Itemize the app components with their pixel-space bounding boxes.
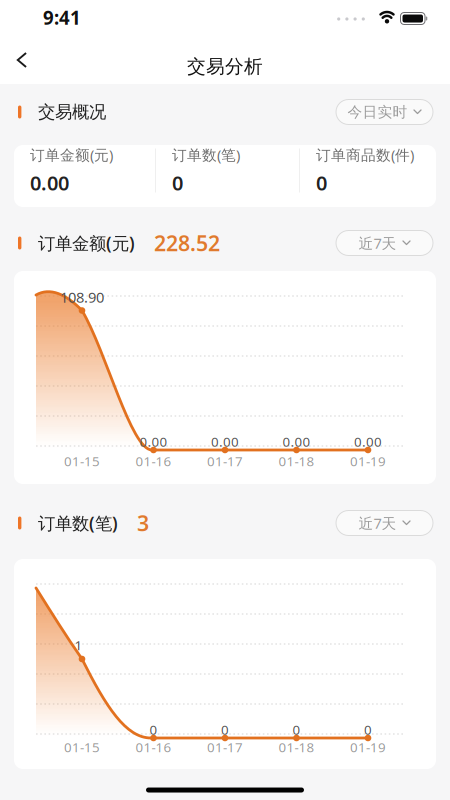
staticText: 0 [172,169,183,196]
staticText: 01-15 [64,738,100,756]
staticText: 0 [221,721,229,738]
staticText: 0 [364,721,372,738]
staticText: 01-17 [207,452,243,470]
staticText: 01-19 [350,452,386,470]
staticText: 今日实时 [347,103,407,121]
staticText: 0 [149,721,157,738]
staticText: 9:41 [43,5,81,30]
staticText: 0 [316,169,327,196]
staticText: 订单商品数(件) [316,145,414,164]
staticText: 01-19 [350,738,386,756]
button[interactable] [7,42,37,78]
staticText: 0.00 [139,433,167,450]
staticText: 交易概况 [38,101,106,123]
staticText: 近7天 [358,233,396,253]
staticText: 01-16 [135,452,171,470]
staticText: 0.00 [354,433,382,450]
staticText: 订单数(笔) [38,511,118,534]
staticText: 01-18 [278,738,314,756]
staticText: 近7天 [358,513,396,533]
staticText: 01-15 [64,452,100,470]
button[interactable]: 今日实时 [336,99,433,124]
staticText: 01-18 [278,452,314,470]
staticText: 0.00 [282,433,310,450]
staticText: 订单金额(元) [30,145,113,164]
staticText: 1 [74,636,82,654]
staticText: 0.00 [211,433,239,450]
staticText: 订单数(笔) [172,145,240,164]
button[interactable]: 近7天 [336,510,433,535]
staticText: 108.90 [60,287,104,307]
staticText: 0.00 [30,169,69,196]
staticText: 交易分析 [187,55,263,78]
staticText: 0 [292,721,300,738]
staticText: 01-16 [135,738,171,756]
staticText: 订单金额(元) [38,231,135,254]
staticText: 228.52 [154,229,220,257]
staticText: 3 [137,509,149,537]
staticText: 01-17 [207,738,243,756]
button[interactable]: 近7天 [336,230,433,255]
